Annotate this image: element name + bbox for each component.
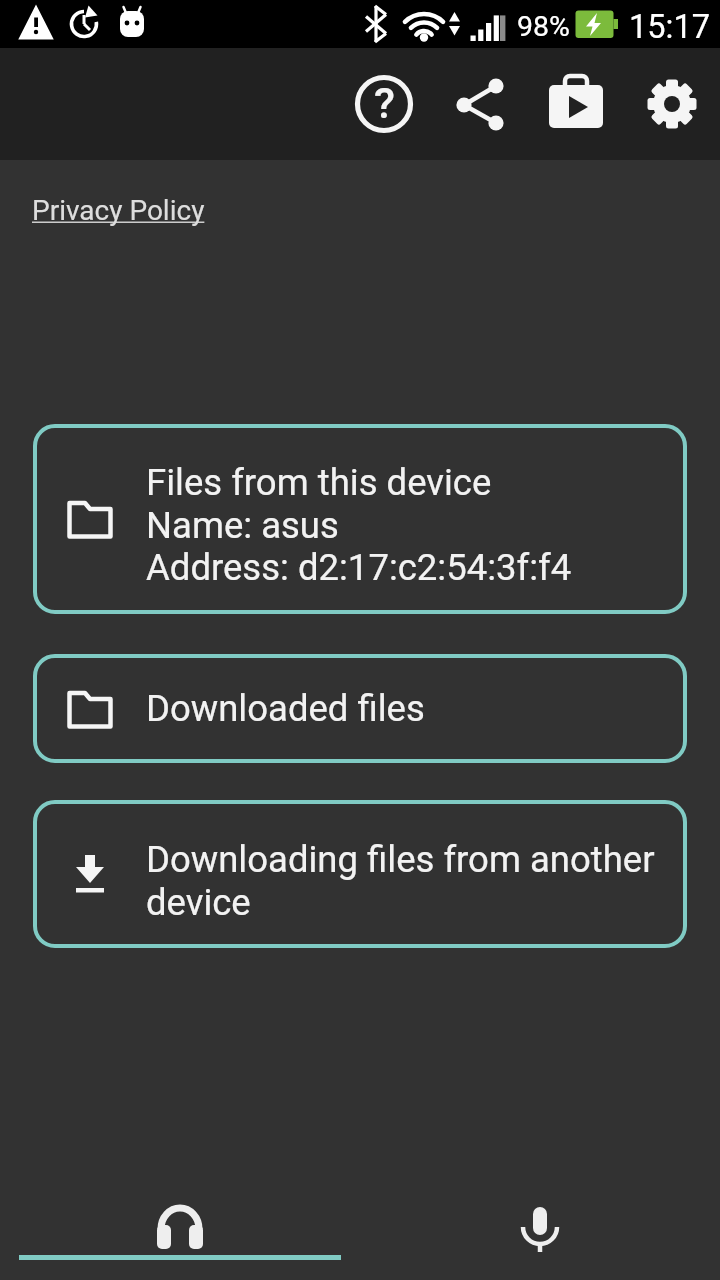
staticText: 15:17 [629, 8, 710, 46]
button[interactable] [360, 1160, 720, 1280]
button[interactable] [624, 48, 720, 160]
button[interactable]: Downloading files from another device [33, 800, 687, 948]
button[interactable]: Files from this device Name: asus Addres… [33, 424, 687, 614]
staticText: Downloaded files [146, 687, 425, 730]
button[interactable] [432, 48, 528, 160]
button[interactable] [528, 48, 624, 160]
staticText: 98% [517, 10, 570, 43]
button[interactable]: Downloaded files [33, 654, 687, 763]
staticText: ? [374, 78, 395, 128]
staticText: Downloading files from another device [146, 838, 655, 924]
staticText: Files from this device Name: asus Addres… [146, 461, 572, 589]
button[interactable] [0, 1160, 360, 1280]
staticText: Privacy Policy [32, 194, 205, 227]
button[interactable]: Privacy Policy [32, 194, 205, 227]
button[interactable]: ? [336, 48, 432, 160]
